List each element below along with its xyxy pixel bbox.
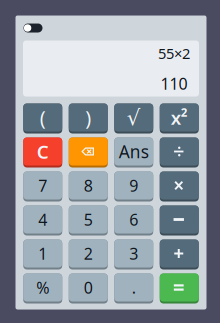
button[interactable]: 0: [69, 273, 108, 303]
staticText: 9: [129, 175, 138, 196]
staticText: C: [37, 139, 49, 164]
button[interactable]: Equals: [160, 273, 199, 303]
staticText: (: [40, 104, 46, 131]
staticText: ): [85, 104, 91, 131]
button[interactable]: 5: [69, 205, 108, 235]
staticText: %: [36, 277, 49, 298]
staticText: 5: [84, 209, 93, 230]
button[interactable]: Plus: [160, 239, 199, 269]
staticText: √: [127, 105, 141, 130]
staticText: 6: [129, 209, 138, 230]
staticText: 3: [129, 243, 138, 264]
staticText: 2: [84, 243, 93, 264]
button[interactable]: 4: [23, 205, 62, 235]
button[interactable]: Divide: [160, 137, 199, 167]
button[interactable]: Ans: [114, 137, 153, 167]
staticText: .: [132, 277, 136, 298]
button[interactable]: 6: [114, 205, 153, 235]
button[interactable]: Minus: [160, 205, 199, 235]
staticText: 0: [84, 277, 93, 298]
staticText: 7: [38, 175, 47, 196]
staticText: 4: [38, 209, 47, 230]
button[interactable]: √: [114, 103, 153, 133]
staticText: x²: [171, 105, 188, 130]
button[interactable]: x²: [160, 103, 199, 133]
staticText: 55×2: [158, 43, 190, 63]
button[interactable]: C: [23, 137, 62, 167]
button[interactable]: 3: [114, 239, 153, 269]
staticText: 8: [84, 175, 93, 196]
button[interactable]: 9: [114, 171, 153, 201]
button[interactable]: Power: [23, 23, 42, 32]
button[interactable]: 8: [69, 171, 108, 201]
staticText: 1: [38, 243, 47, 264]
button[interactable]: 1: [23, 239, 62, 269]
staticText: 110: [160, 73, 187, 94]
button[interactable]: 7: [23, 171, 62, 201]
button[interactable]: 2: [69, 239, 108, 269]
button[interactable]: Multiply: [160, 171, 199, 201]
staticText: Ans: [119, 140, 149, 163]
button[interactable]: %: [23, 273, 62, 303]
button[interactable]: (: [23, 103, 62, 133]
button[interactable]: ): [69, 103, 108, 133]
button[interactable]: Delete: [69, 137, 108, 167]
button[interactable]: .: [114, 273, 153, 303]
